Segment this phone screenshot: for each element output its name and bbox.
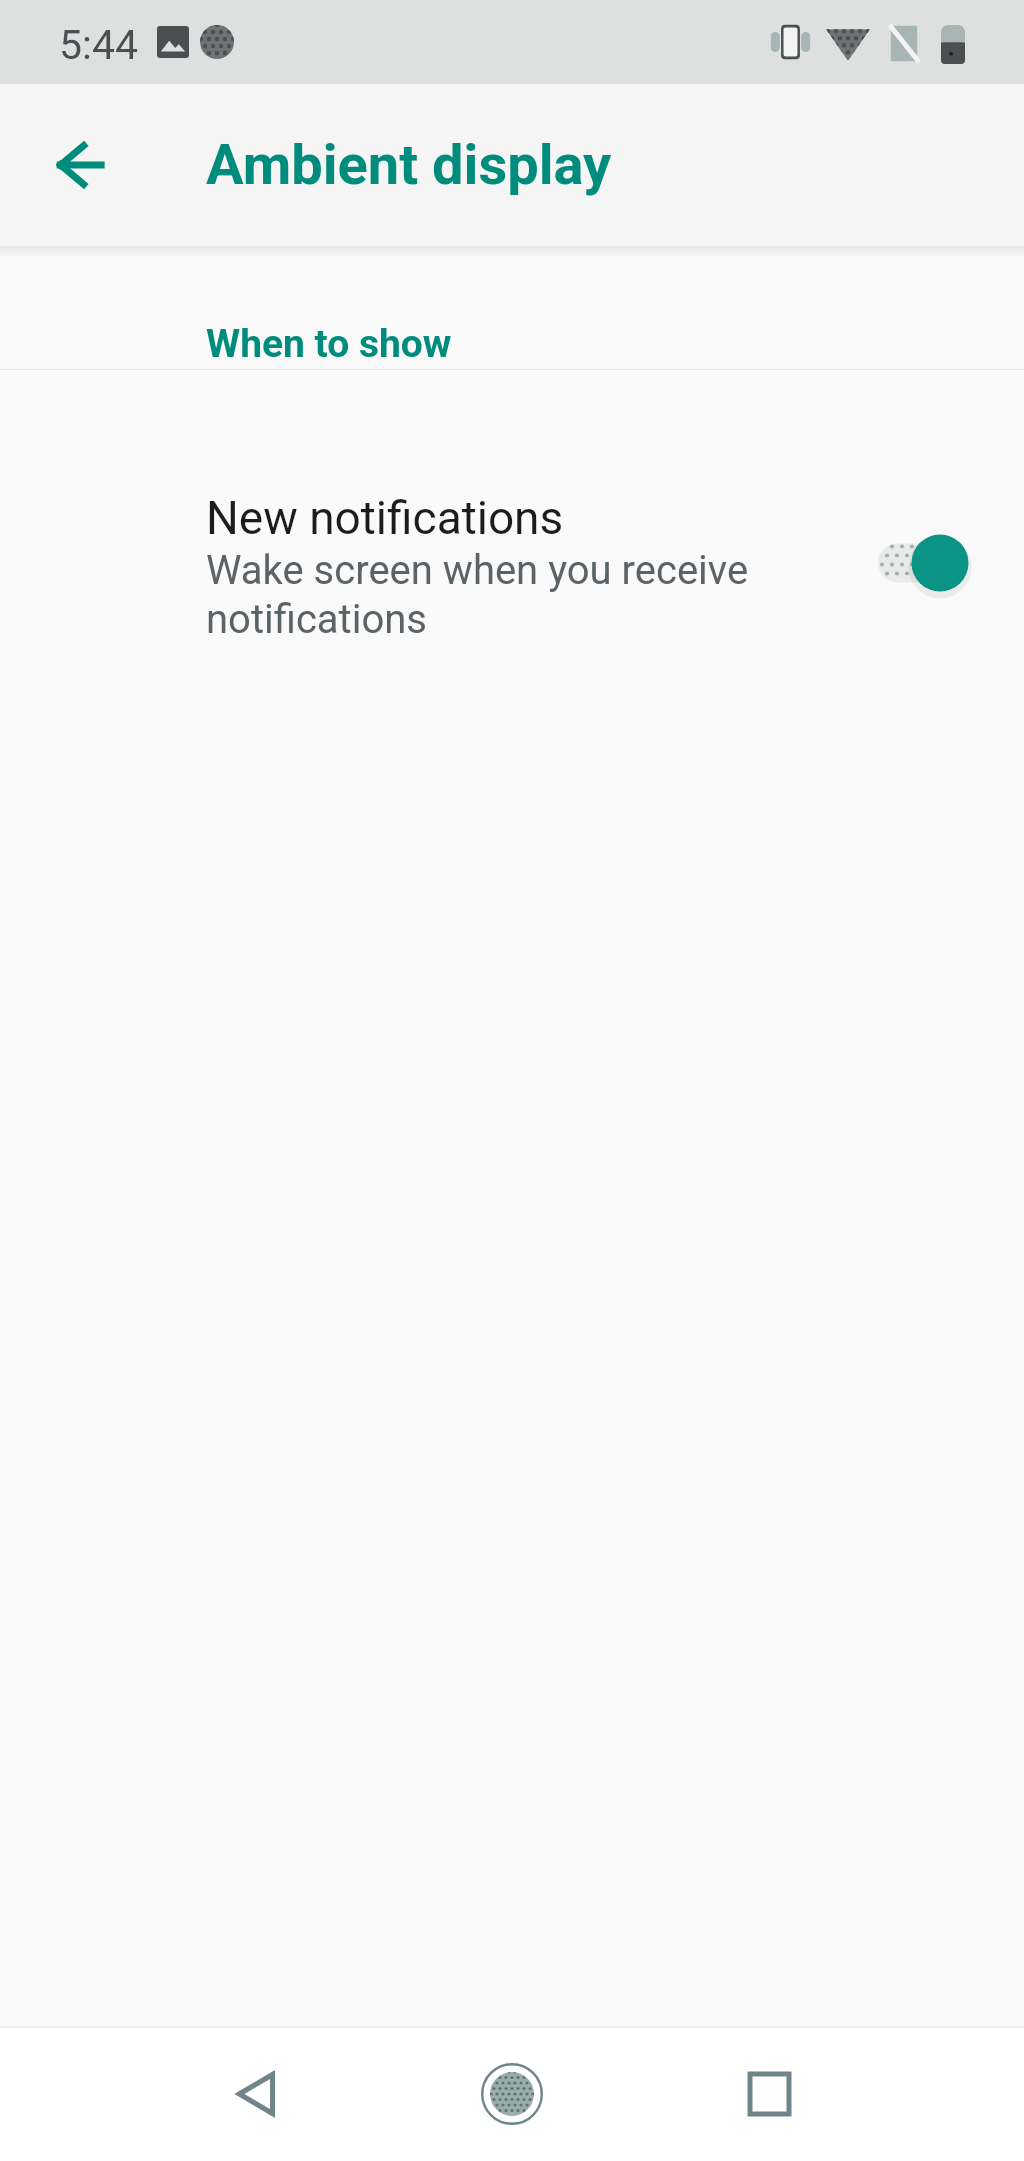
staticText: Wake screen when you receive notificatio…	[206, 547, 786, 643]
button[interactable]: Recent apps	[709, 2028, 829, 2160]
button[interactable]: New notifications switch	[858, 518, 988, 608]
button[interactable]: New notifications	[0, 370, 1024, 670]
staticText: Ambient display	[206, 132, 612, 198]
button[interactable]: Home	[452, 2028, 572, 2160]
staticText: New notifications	[206, 491, 564, 545]
staticText: 5:44	[59, 21, 139, 69]
staticText: When to show	[206, 321, 452, 367]
button[interactable]: Back	[196, 2028, 316, 2160]
button[interactable]: Navigate up	[32, 117, 128, 213]
